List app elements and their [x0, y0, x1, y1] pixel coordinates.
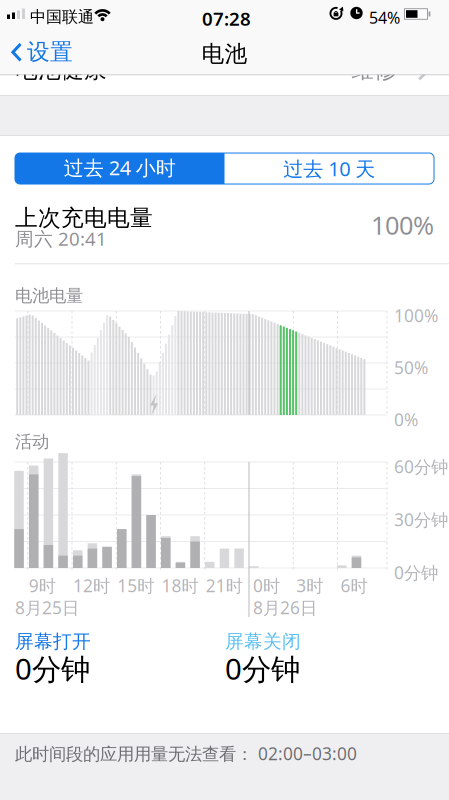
staticText: 8月25日 [15, 596, 79, 619]
staticText: 9时 [29, 574, 56, 597]
button[interactable]: 过去 10 天 [224, 153, 434, 184]
staticText: 0% [394, 408, 418, 431]
staticText: 3时 [296, 574, 323, 597]
staticText: 0分钟 [225, 649, 300, 688]
staticText: 上次充电电量 [15, 204, 153, 232]
staticText: 30分钟 [394, 508, 448, 531]
staticText: 屏幕关闭 [225, 630, 301, 653]
staticText: 8月26日 [253, 596, 317, 619]
staticText: 0分钟 [394, 561, 438, 584]
staticText: 过去 24 小时 [64, 154, 176, 181]
staticText: 电池 [201, 40, 247, 68]
staticText: 100% [371, 208, 434, 242]
staticText: 周六 20:41 [15, 226, 107, 251]
staticText: 54% [369, 7, 400, 28]
staticText: 07:28 [202, 6, 251, 31]
button[interactable]: 电池健康 [0, 0, 449, 95]
staticText: 60分钟 [394, 455, 448, 478]
staticText: 0分钟 [15, 649, 90, 688]
staticText: 屏幕打开 [15, 630, 91, 653]
staticText: 中国联通 [30, 7, 94, 27]
staticText: 电池健康 [15, 56, 107, 84]
staticText: 100% [394, 304, 438, 327]
button[interactable]: 返回设置 [9, 38, 73, 66]
staticText: 6时 [340, 574, 367, 597]
staticText: 12时 [73, 574, 110, 597]
staticText: 过去 10 天 [283, 155, 375, 182]
staticText: 15时 [117, 574, 154, 597]
staticText: 电池电量 [15, 285, 83, 306]
staticText: 21时 [206, 574, 243, 597]
button[interactable]: 过去 24 小时 [15, 153, 224, 184]
staticText: 此时间段的应用用量无法查看： 02:00–03:00 [15, 742, 357, 765]
staticText: 18时 [161, 574, 198, 597]
staticText: 50% [394, 356, 428, 379]
staticText: 维修 [351, 56, 397, 84]
staticText: 0时 [253, 574, 280, 597]
staticText: 设置 [27, 38, 73, 66]
staticText: 活动 [15, 431, 49, 452]
